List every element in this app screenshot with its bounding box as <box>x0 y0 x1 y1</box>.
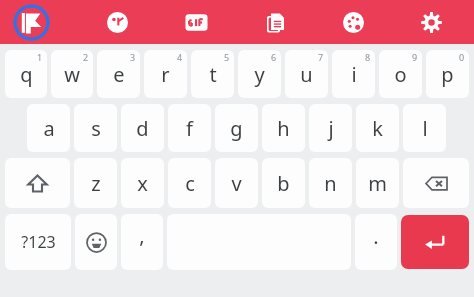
staticText: v <box>231 170 242 197</box>
button[interactable]: y <box>238 50 281 98</box>
staticText: z <box>91 170 101 197</box>
button[interactable]: i <box>332 50 375 98</box>
staticText: c <box>185 170 195 197</box>
button[interactable]: Stickers <box>78 0 157 44</box>
button[interactable]: s <box>74 104 117 152</box>
button[interactable]: v <box>215 158 258 208</box>
staticText: p <box>441 61 454 88</box>
button[interactable]: c <box>168 158 211 208</box>
staticText: b <box>277 170 290 197</box>
button[interactable]: Shift <box>5 158 70 208</box>
staticText: g <box>230 115 243 142</box>
staticText: 5 <box>224 51 230 63</box>
button[interactable]: Backspace <box>403 158 469 208</box>
button[interactable]: Enter <box>401 215 469 269</box>
staticText: 2 <box>83 51 89 63</box>
staticText: , <box>139 222 145 249</box>
button[interactable]: m <box>356 158 399 208</box>
staticText: a <box>43 115 55 142</box>
button[interactable]: Emoji <box>75 214 117 270</box>
button[interactable]: q <box>5 50 47 98</box>
button[interactable]: n <box>309 158 352 208</box>
staticText: 9 <box>412 51 418 63</box>
button[interactable]: k <box>356 104 399 152</box>
staticText: y <box>254 61 265 88</box>
button[interactable]: Settings <box>392 0 470 44</box>
button[interactable]: GIF <box>157 0 236 44</box>
button[interactable]: u <box>285 50 328 98</box>
staticText: 7 <box>318 51 324 63</box>
button[interactable]: a <box>27 104 70 152</box>
staticText: 1 <box>37 51 43 63</box>
staticText: m <box>368 170 387 197</box>
staticText: u <box>300 61 313 88</box>
staticText: i <box>351 61 357 88</box>
button[interactable]: . <box>355 214 397 270</box>
button[interactable]: t <box>191 50 234 98</box>
staticText: l <box>422 115 428 142</box>
staticText: x <box>137 170 148 197</box>
button[interactable]: Themes <box>314 0 392 44</box>
button[interactable]: b <box>262 158 305 208</box>
button[interactable]: , <box>121 214 163 270</box>
button[interactable]: h <box>262 104 305 152</box>
button[interactable]: e <box>97 50 140 98</box>
staticText: . <box>373 223 379 250</box>
button[interactable]: x <box>121 158 164 208</box>
staticText: t <box>209 61 217 88</box>
staticText: ?123 <box>21 231 56 253</box>
staticText: 3 <box>130 51 136 63</box>
staticText: s <box>91 115 101 142</box>
staticText: n <box>324 170 337 197</box>
button[interactable]: w <box>51 50 93 98</box>
staticText: h <box>277 115 290 142</box>
staticText: 6 <box>271 51 277 63</box>
staticText: k <box>372 115 383 142</box>
button[interactable]: d <box>121 104 164 152</box>
staticText: e <box>113 61 125 88</box>
button[interactable]: g <box>215 104 258 152</box>
button[interactable]: ?123 <box>5 214 71 270</box>
staticText: j <box>328 115 334 142</box>
staticText: q <box>20 61 33 88</box>
button[interactable]: Keyboard logo <box>13 4 50 41</box>
button[interactable]: j <box>309 104 352 152</box>
button[interactable]: p <box>426 50 469 98</box>
staticText: d <box>136 115 149 142</box>
button[interactable]: o <box>379 50 422 98</box>
staticText: r <box>161 61 170 88</box>
button[interactable]: f <box>168 104 211 152</box>
staticText: 4 <box>177 51 183 63</box>
staticText: w <box>64 61 80 88</box>
staticText: o <box>394 61 407 88</box>
button[interactable]: Clipboard <box>236 0 314 44</box>
button[interactable]: r <box>144 50 187 98</box>
button[interactable]: z <box>74 158 117 208</box>
staticText: f <box>186 115 193 142</box>
staticText: 0 <box>459 51 465 63</box>
staticText: 8 <box>365 51 371 63</box>
button[interactable]: l <box>403 104 446 152</box>
